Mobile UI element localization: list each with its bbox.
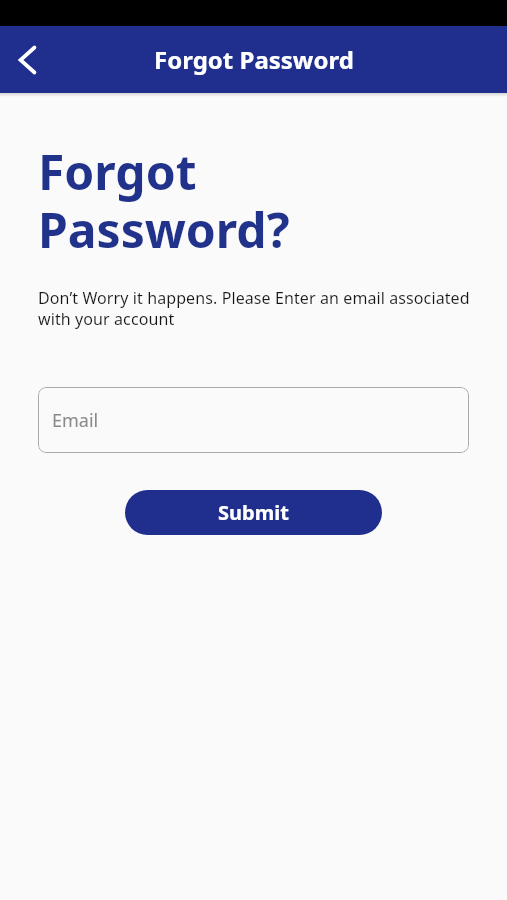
staticText: Submit (218, 499, 289, 526)
staticText: Forgot Password (154, 43, 354, 76)
button[interactable] (13, 45, 43, 75)
button[interactable]: Email (38, 387, 469, 453)
staticText: Email (52, 408, 99, 433)
staticText: Don’t Worry it happens. Please Enter an … (38, 287, 470, 330)
staticText: Forgot Password? (38, 139, 290, 262)
button[interactable]: Submit (125, 490, 382, 535)
